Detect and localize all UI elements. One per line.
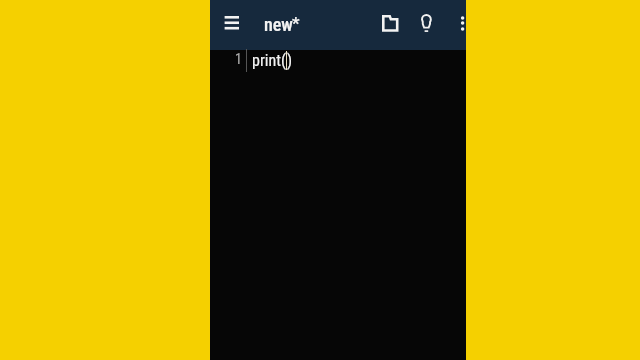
button[interactable]: Open file	[368, 0, 412, 50]
staticText: 1	[235, 51, 242, 67]
staticText: print(	[252, 51, 286, 70]
staticText: )	[287, 51, 293, 70]
staticText: new	[264, 14, 293, 35]
button[interactable]: Tips	[410, 0, 443, 50]
staticText: *	[292, 13, 300, 33]
button[interactable]: More options	[446, 0, 467, 50]
button[interactable]: Navigation menu	[210, 0, 252, 50]
